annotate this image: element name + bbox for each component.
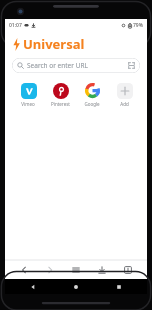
- button[interactable]: Home: [61, 279, 91, 294]
- button[interactable]: Search or enter URL: [12, 58, 140, 73]
- button[interactable]: Add: [109, 81, 139, 108]
- staticText: 79%: [133, 22, 143, 29]
- button[interactable]: Back: [13, 260, 35, 279]
- button[interactable]: Tabs: [117, 260, 139, 279]
- button[interactable]: Vimeo: [13, 81, 43, 108]
- button[interactable]: Google: [77, 81, 107, 108]
- staticText: Search or enter URL: [27, 61, 88, 70]
- button[interactable]: Menu: [65, 260, 87, 279]
- staticText: Pinterest: [51, 101, 70, 107]
- staticText: 01:07: [9, 22, 22, 29]
- button[interactable]: Recent apps: [104, 279, 134, 294]
- staticText: Google: [84, 101, 100, 107]
- staticText: Vimeo: [21, 101, 35, 107]
- button[interactable]: Pinterest: [45, 81, 75, 108]
- other: Scan QR code: [128, 62, 135, 69]
- button[interactable]: Back: [18, 279, 48, 294]
- staticText: Universal: [23, 35, 85, 53]
- button[interactable]: Downloads: [91, 260, 113, 279]
- staticText: Add: [120, 101, 129, 107]
- button[interactable]: Forward: [39, 260, 61, 279]
